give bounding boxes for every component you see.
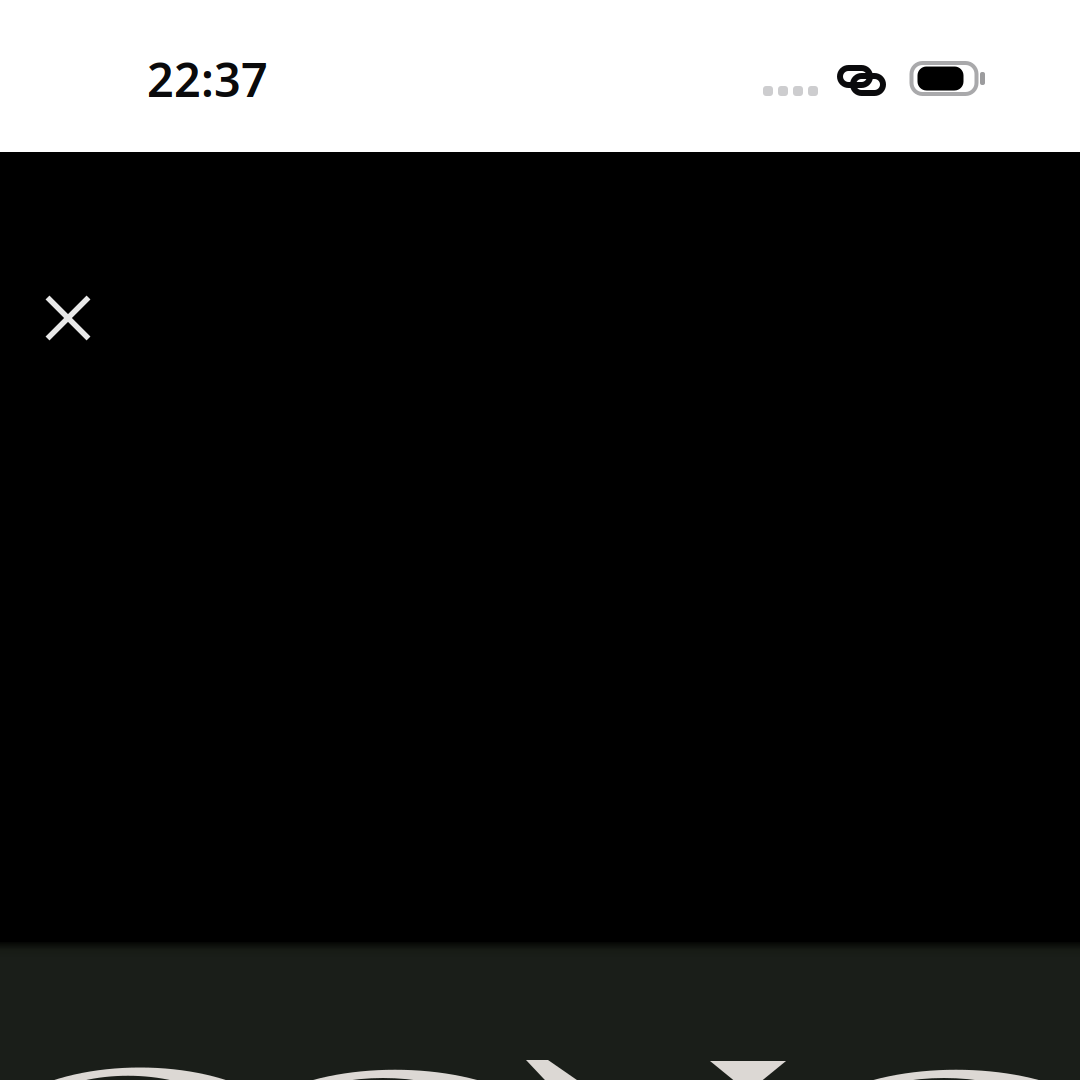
staticText: 22:37 xyxy=(147,48,268,110)
button[interactable]: Close xyxy=(20,270,116,366)
